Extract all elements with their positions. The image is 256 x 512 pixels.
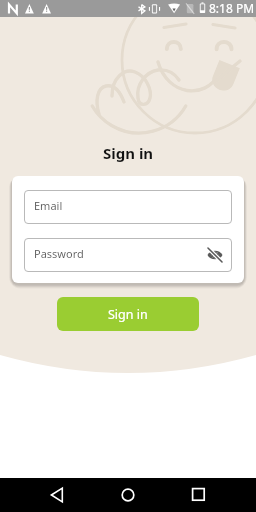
- staticText: Sign in: [103, 143, 154, 163]
- button[interactable]: Recent apps: [182, 478, 216, 512]
- button[interactable]: Back: [40, 478, 74, 512]
- button[interactable]: Sign in: [57, 297, 199, 331]
- button[interactable]: Email: [24, 190, 232, 224]
- staticText: Sign in: [108, 306, 148, 323]
- staticText: 8:18 PM: [209, 0, 255, 16]
- button[interactable]: Home: [111, 478, 145, 512]
- other: Toggle password visibility: [207, 247, 223, 263]
- button[interactable]: Password: [24, 238, 232, 272]
- staticText: Password: [34, 246, 84, 261]
- staticText: Email: [34, 198, 63, 213]
